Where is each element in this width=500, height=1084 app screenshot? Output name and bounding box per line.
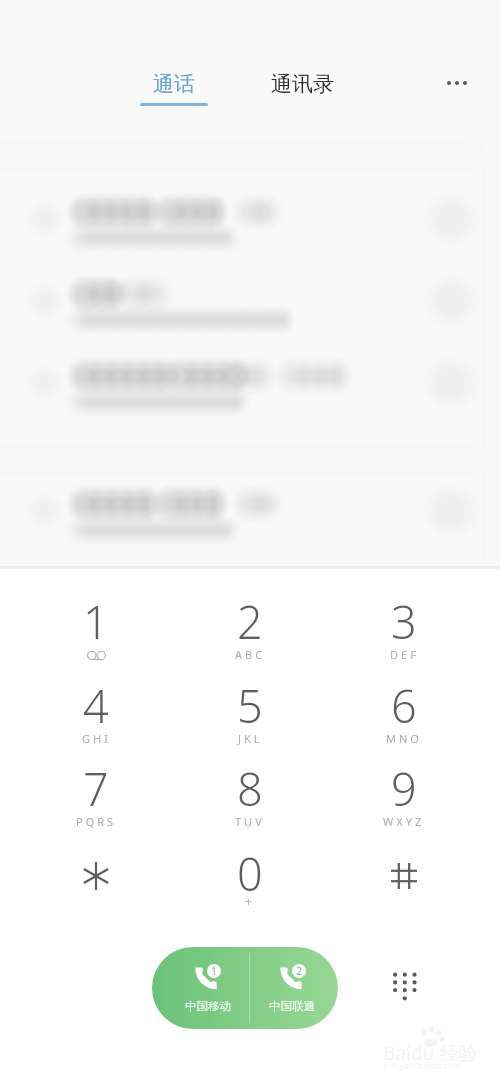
button[interactable]: 8 [174, 749, 326, 831]
button[interactable]: 通讯录 [262, 58, 342, 100]
staticText: WXYZ [383, 814, 425, 829]
button[interactable]: 5 [174, 666, 326, 748]
button[interactable]: Call log entry [0, 342, 500, 424]
staticText: Baidu 经验 [383, 1040, 478, 1066]
staticText: 7 [83, 758, 109, 819]
button[interactable]: More options [435, 61, 479, 105]
staticText: + [245, 893, 255, 909]
staticText: DEF [390, 647, 419, 662]
button[interactable]: 2 [250, 947, 334, 1029]
staticText: 通话 [153, 71, 195, 97]
button[interactable]: Call log entry [0, 260, 500, 342]
staticText: 5 [237, 675, 263, 736]
staticText: 中国联通 [269, 999, 315, 1013]
button[interactable]: 0 [174, 834, 326, 916]
staticText: 中国移动 [185, 999, 231, 1013]
staticText: 通讯录 [271, 71, 334, 97]
staticText: 4 [83, 675, 109, 736]
button[interactable] [20, 834, 172, 916]
button[interactable]: Keypad [380, 962, 430, 1012]
button[interactable]: 6 [328, 666, 480, 748]
staticText: MNO [386, 731, 422, 746]
staticText: 9 [391, 758, 417, 819]
staticText: 1 [83, 591, 109, 652]
button[interactable]: 4 [20, 666, 172, 748]
staticText: TUV [235, 814, 265, 829]
staticText: 6 [391, 675, 417, 736]
button[interactable]: 2 [174, 582, 326, 664]
button[interactable]: 3 [328, 582, 480, 664]
button[interactable]: 1 [165, 947, 250, 1029]
staticText: 0 [237, 843, 263, 904]
staticText: PQRS [76, 814, 117, 829]
staticText: 2 [296, 964, 302, 978]
button[interactable]: 1 [20, 582, 172, 664]
staticText: 8 [237, 758, 263, 819]
button[interactable]: 9 [328, 749, 480, 831]
staticText: jingyan.baidu.com [384, 1059, 462, 1071]
button[interactable]: Call log entry [0, 178, 500, 260]
staticText: 1 [211, 964, 217, 978]
staticText: 2 [237, 591, 263, 652]
button[interactable]: 7 [20, 749, 172, 831]
staticText: 3 [391, 591, 417, 652]
button[interactable]: Call log entry [0, 470, 500, 552]
button[interactable]: 通话 [134, 58, 214, 114]
staticText: GHI [82, 731, 111, 746]
staticText: JKL [238, 731, 263, 746]
button[interactable] [328, 834, 480, 916]
staticText: ABC [235, 647, 266, 662]
